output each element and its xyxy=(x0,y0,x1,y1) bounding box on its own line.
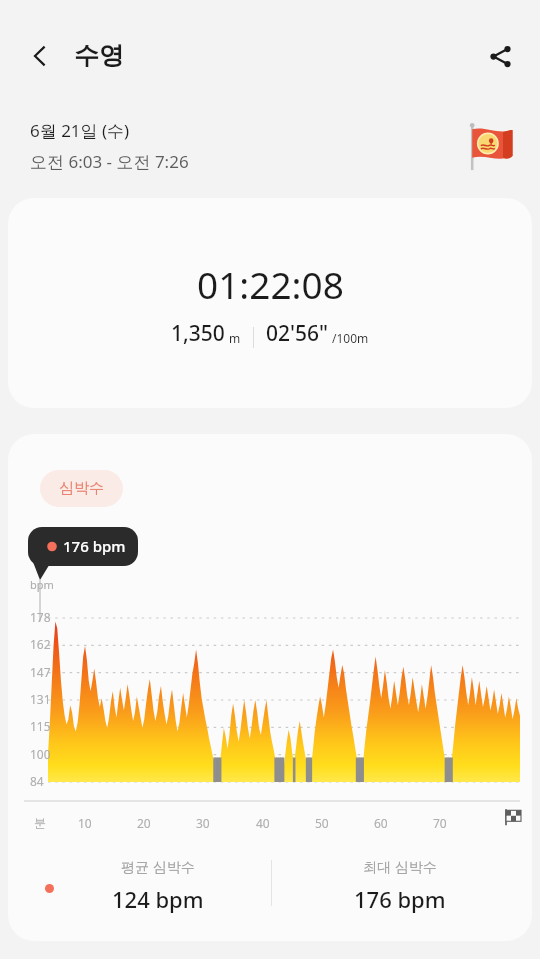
staticText: 02'56" xyxy=(266,319,329,348)
button[interactable]: Share xyxy=(474,30,526,82)
staticText: 176 bpm xyxy=(354,884,446,914)
staticText: 147 xyxy=(30,664,51,680)
button[interactable]: Back xyxy=(14,30,66,82)
staticText: 70 xyxy=(433,815,447,831)
staticText: m xyxy=(229,330,241,346)
staticText: 162 xyxy=(30,636,51,652)
staticText: 124 bpm xyxy=(112,884,204,914)
staticText: 84 xyxy=(30,773,44,789)
staticText: 20 xyxy=(137,815,151,831)
staticText: 심박수 xyxy=(59,479,104,498)
staticText: 6월 21일 (수) xyxy=(30,119,130,142)
staticText: 분 xyxy=(34,815,46,830)
button[interactable]: 심박수 xyxy=(40,470,123,507)
staticText: 131 xyxy=(30,691,51,707)
staticText: 50 xyxy=(315,815,329,831)
staticText: 수영 xyxy=(74,40,124,71)
staticText: 최대 심박수 xyxy=(363,857,437,876)
staticText: 01:22:08 xyxy=(197,259,344,309)
staticText: 30 xyxy=(196,815,210,831)
staticText: 100 xyxy=(30,746,51,762)
staticText: 60 xyxy=(374,815,388,831)
staticText: 평균 심박수 xyxy=(121,857,195,876)
staticText: 오전 6:03 - 오전 7:26 xyxy=(30,150,189,173)
button[interactable]: 01:22:08 xyxy=(8,198,532,408)
staticText: 178 xyxy=(30,609,51,625)
staticText: 10 xyxy=(78,815,92,831)
staticText: /100m xyxy=(332,330,369,346)
button[interactable]: Achievement badge xyxy=(461,118,517,174)
staticText: 40 xyxy=(256,815,270,831)
staticText: 176 bpm xyxy=(63,536,126,556)
staticText: bpm xyxy=(30,577,54,592)
staticText: 115 xyxy=(30,718,51,734)
staticText: 1,350 xyxy=(171,319,225,348)
